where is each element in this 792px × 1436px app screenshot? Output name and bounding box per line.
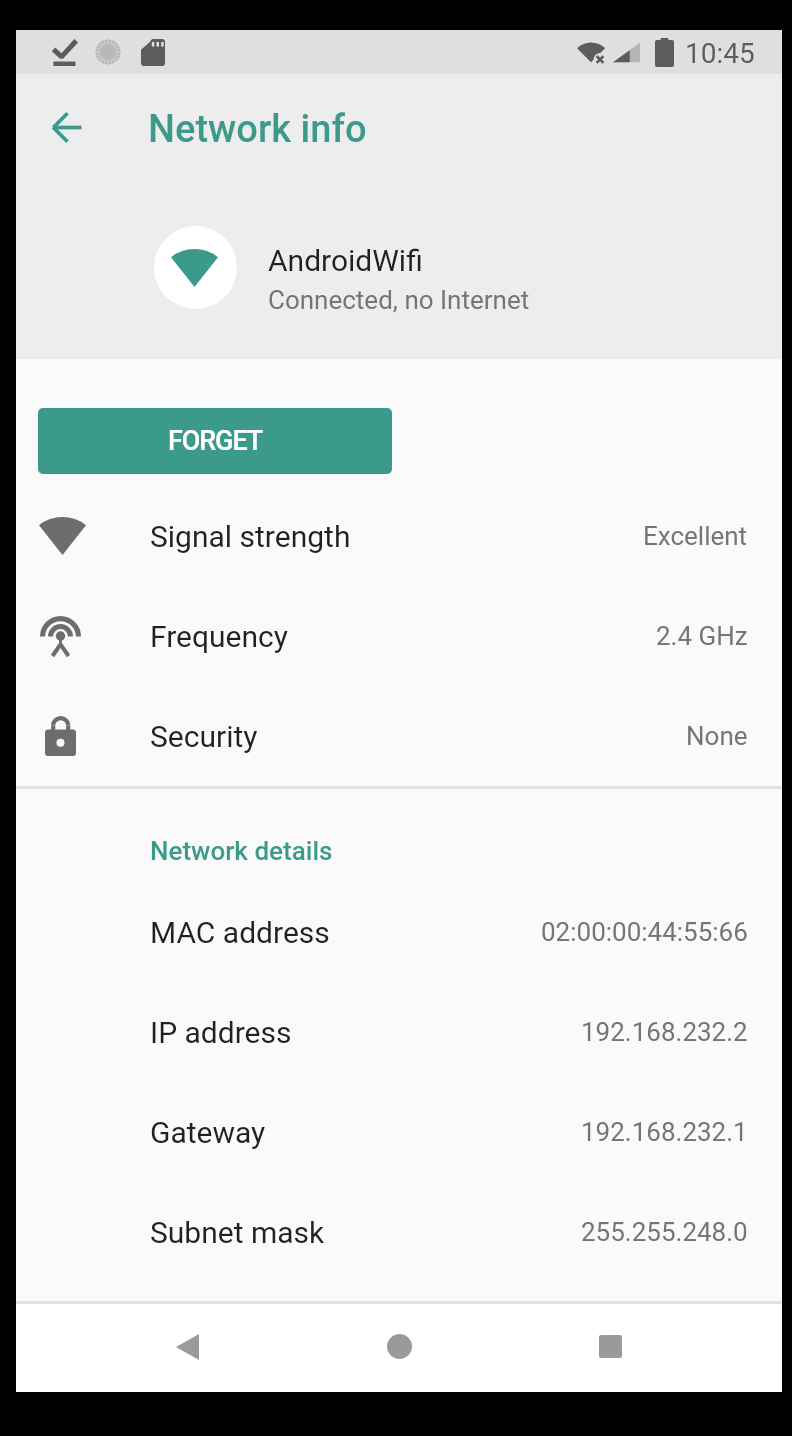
button[interactable]: IP address: [16, 982, 782, 1082]
button[interactable]: Gateway: [16, 1082, 782, 1182]
button[interactable]: Subnet mask: [16, 1182, 782, 1282]
staticText: 2.4 GHz: [656, 621, 748, 651]
staticText: Signal strength: [150, 519, 351, 554]
staticText: Frequency: [150, 619, 288, 654]
staticText: FORGET: [168, 425, 263, 457]
staticText: Network details: [150, 836, 333, 866]
button[interactable]: Security: [16, 686, 782, 786]
staticText: None: [686, 721, 748, 751]
staticText: 192.168.232.2: [581, 1017, 748, 1047]
button[interactable]: Signal strength: [16, 486, 782, 586]
button[interactable]: Back: [119, 1315, 255, 1378]
button[interactable]: MAC address: [16, 882, 782, 982]
staticText: Security: [150, 719, 258, 754]
button[interactable]: Back: [34, 93, 102, 161]
staticText: Connected, no Internet: [268, 285, 530, 315]
staticText: 10:45: [685, 37, 755, 70]
staticText: Network info: [148, 107, 367, 152]
staticText: Gateway: [150, 1115, 266, 1150]
staticText: MAC address: [150, 915, 330, 950]
button[interactable]: Frequency: [16, 586, 782, 686]
button[interactable]: Home: [331, 1315, 467, 1378]
staticText: 02:00:00:44:55:66: [541, 917, 748, 947]
staticText: Excellent: [643, 521, 748, 551]
staticText: Subnet mask: [150, 1215, 325, 1250]
button[interactable]: FORGET: [38, 408, 392, 474]
staticText: IP address: [150, 1015, 292, 1050]
staticText: AndroidWifi: [268, 243, 423, 278]
staticText: 192.168.232.1: [581, 1117, 748, 1147]
staticText: 255.255.248.0: [581, 1217, 748, 1247]
button[interactable]: Recent apps: [542, 1315, 678, 1378]
